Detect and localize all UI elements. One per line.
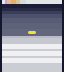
button[interactable]: Action — [28, 31, 36, 34]
